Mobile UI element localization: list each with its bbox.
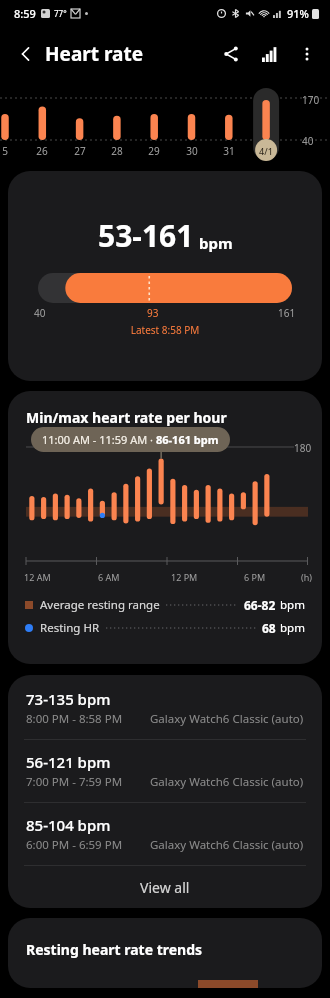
staticText: 4/1 xyxy=(254,145,278,157)
staticText: 56-121 bpm xyxy=(26,752,111,772)
button[interactable]: 73-135 bpm xyxy=(8,675,322,739)
button[interactable]: Share xyxy=(212,35,250,73)
button[interactable]: 85-104 bpm xyxy=(8,803,322,865)
staticText: Heart rate xyxy=(45,41,144,67)
staticText: Galaxy Watch6 Classic (auto) xyxy=(150,711,304,727)
staticText: Min/max heart rate per hour xyxy=(26,408,227,427)
staticText: 73-135 bpm xyxy=(26,689,111,709)
staticText: Resting heart rate trends xyxy=(26,940,203,959)
staticText: 30 xyxy=(183,144,201,158)
button[interactable]: Resting heart rate trends xyxy=(8,918,322,988)
button[interactable]: View all xyxy=(8,866,322,908)
staticText: 53-161 xyxy=(98,215,194,256)
staticText: 27 xyxy=(71,144,89,158)
staticText: 91% xyxy=(287,6,309,21)
button[interactable]: 53-161 xyxy=(8,171,322,381)
staticText: 86-161 bpm xyxy=(156,432,219,447)
staticText: bpm xyxy=(280,620,305,636)
staticText: 6 PM xyxy=(244,571,266,583)
button[interactable]: 56-121 bpm xyxy=(8,740,322,802)
staticText: (h) xyxy=(301,571,312,583)
staticText: 40 xyxy=(34,306,46,320)
staticText: View all xyxy=(140,878,190,897)
button[interactable]: Min/max heart rate per hour xyxy=(8,391,322,664)
staticText: 77° xyxy=(54,8,67,19)
staticText: 66-82 xyxy=(244,597,276,613)
staticText: 93 xyxy=(147,306,159,320)
staticText: Latest 8:58 PM xyxy=(8,323,322,337)
staticText: 28 xyxy=(108,144,126,158)
button[interactable]: Back xyxy=(6,34,46,74)
button[interactable]: Chart xyxy=(250,35,288,73)
staticText: Resting HR xyxy=(40,620,100,636)
staticText: 161 xyxy=(278,306,296,320)
staticText: 40 xyxy=(302,134,314,148)
staticText: 8:00 PM - 8:58 PM xyxy=(26,711,123,727)
staticText: 26 xyxy=(33,144,51,158)
staticText: 170 xyxy=(302,93,320,107)
staticText: 7:00 PM - 7:59 PM xyxy=(26,774,123,790)
staticText: 12 AM xyxy=(24,571,51,583)
staticText: 180 xyxy=(294,441,312,455)
staticText: Galaxy Watch6 Classic (auto) xyxy=(150,774,304,790)
staticText: 6 AM xyxy=(98,571,120,583)
staticText: 5 xyxy=(0,144,14,158)
button[interactable]: More options xyxy=(288,35,326,73)
staticText: Average resting range xyxy=(40,597,160,613)
staticText: 29 xyxy=(145,144,163,158)
staticText: 85-104 bpm xyxy=(26,815,111,835)
staticText: 8:59 xyxy=(14,6,36,21)
staticText: bpm xyxy=(280,597,305,613)
staticText: 11:00 AM - 11:59 AM · xyxy=(42,432,156,447)
staticText: 12 PM xyxy=(171,571,198,583)
staticText: 6:00 PM - 6:59 PM xyxy=(26,837,123,853)
staticText: 31 xyxy=(220,144,238,158)
staticText: Galaxy Watch6 Classic (auto) xyxy=(150,837,304,853)
staticText: 68 xyxy=(262,620,276,636)
staticText: bpm xyxy=(199,233,233,253)
